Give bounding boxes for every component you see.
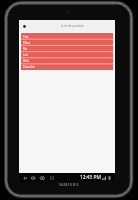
staticText: 12:45 PM [80, 174, 101, 181]
staticText: SAMSUNG [59, 182, 79, 187]
staticText: Lait [23, 53, 28, 57]
button[interactable]: Recent apps [40, 175, 45, 180]
button[interactable]: Riz [21, 46, 113, 52]
staticText: Riz [23, 47, 27, 51]
staticText: Pain [23, 35, 29, 39]
button[interactable]: Pain [21, 33, 113, 40]
button[interactable]: Home [31, 175, 36, 180]
button[interactable]: Lait [21, 52, 113, 58]
staticText: Liste de produits [61, 24, 84, 28]
staticText: Miel [23, 59, 29, 63]
button[interactable]: Back [22, 175, 27, 180]
button[interactable]: Screenshot [49, 175, 54, 180]
staticText: Pâtes [23, 41, 31, 45]
button[interactable]: Miel [21, 58, 113, 64]
button[interactable]: Pâtes [21, 40, 113, 46]
button[interactable]: Chocolat [21, 64, 113, 70]
button[interactable]: Navigate up [19, 20, 29, 32]
staticText: Chocolat [23, 65, 35, 69]
